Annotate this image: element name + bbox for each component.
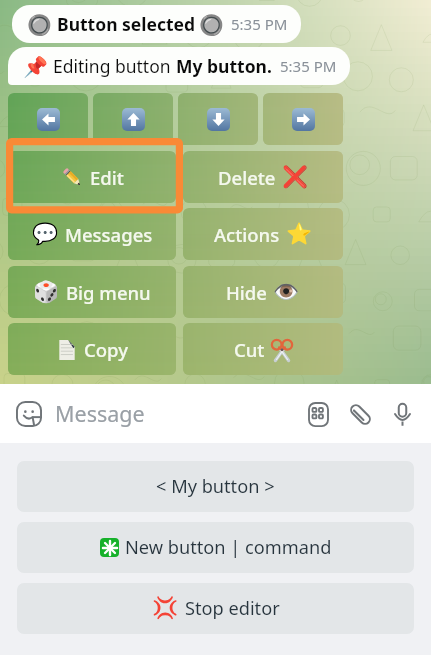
button[interactable]: Hide xyxy=(183,266,343,318)
button[interactable]: 💢 xyxy=(17,583,414,634)
other: Down xyxy=(207,108,230,131)
other: Right xyxy=(292,108,315,131)
button[interactable]: Left xyxy=(8,93,88,145)
staticText: New button | command xyxy=(125,535,332,560)
staticText: Edit xyxy=(90,165,124,190)
staticText: Delete xyxy=(218,165,276,190)
button[interactable]: Attach xyxy=(339,393,381,435)
staticText: 5:35 PM xyxy=(280,56,337,76)
staticText: 🔘 xyxy=(199,13,224,36)
other: Left xyxy=(37,108,60,131)
button[interactable]: Actions xyxy=(183,208,343,260)
staticText: Hide xyxy=(226,280,267,305)
staticText: 🔘 xyxy=(27,13,52,36)
button[interactable]: Up xyxy=(93,93,173,145)
staticText: ⭐ xyxy=(286,222,313,247)
button[interactable]: Cut xyxy=(183,323,343,375)
staticText: Copy xyxy=(84,337,128,362)
staticText: 👁️ xyxy=(273,280,300,305)
button[interactable]: Copy xyxy=(8,323,176,375)
button[interactable]: Edit xyxy=(8,151,176,203)
staticText: Message xyxy=(55,399,145,428)
button[interactable]: Delete xyxy=(183,151,343,203)
staticText: Big menu xyxy=(66,280,151,305)
button[interactable]: < My button > xyxy=(17,461,414,512)
staticText: 💢 xyxy=(152,596,179,621)
staticText: Button selected xyxy=(57,12,196,36)
staticText: 📌 xyxy=(23,55,48,78)
button[interactable]: Bot commands xyxy=(297,393,339,435)
button[interactable]: Voice message xyxy=(381,393,423,435)
staticText: 🎲 xyxy=(33,280,60,305)
staticText: Cut xyxy=(234,337,265,362)
button[interactable]: Down xyxy=(178,93,258,145)
button[interactable]: Right xyxy=(263,93,343,145)
staticText: Editing button xyxy=(53,54,176,78)
staticText: 5:35 PM xyxy=(231,14,288,34)
staticText: ❌ xyxy=(282,165,309,190)
staticText: Actions xyxy=(214,222,280,247)
staticText: Messages xyxy=(65,222,153,247)
staticText: 💬 xyxy=(32,222,59,247)
staticText: < My button > xyxy=(156,474,275,499)
button[interactable]: 🎲 xyxy=(8,266,176,318)
staticText: My button. xyxy=(176,54,272,78)
other: Up xyxy=(122,108,145,131)
button[interactable]: 💬 xyxy=(8,208,176,260)
staticText: Stop editor xyxy=(185,596,280,621)
button[interactable]: New button | command xyxy=(17,522,414,573)
button[interactable]: Emoji xyxy=(12,397,46,431)
